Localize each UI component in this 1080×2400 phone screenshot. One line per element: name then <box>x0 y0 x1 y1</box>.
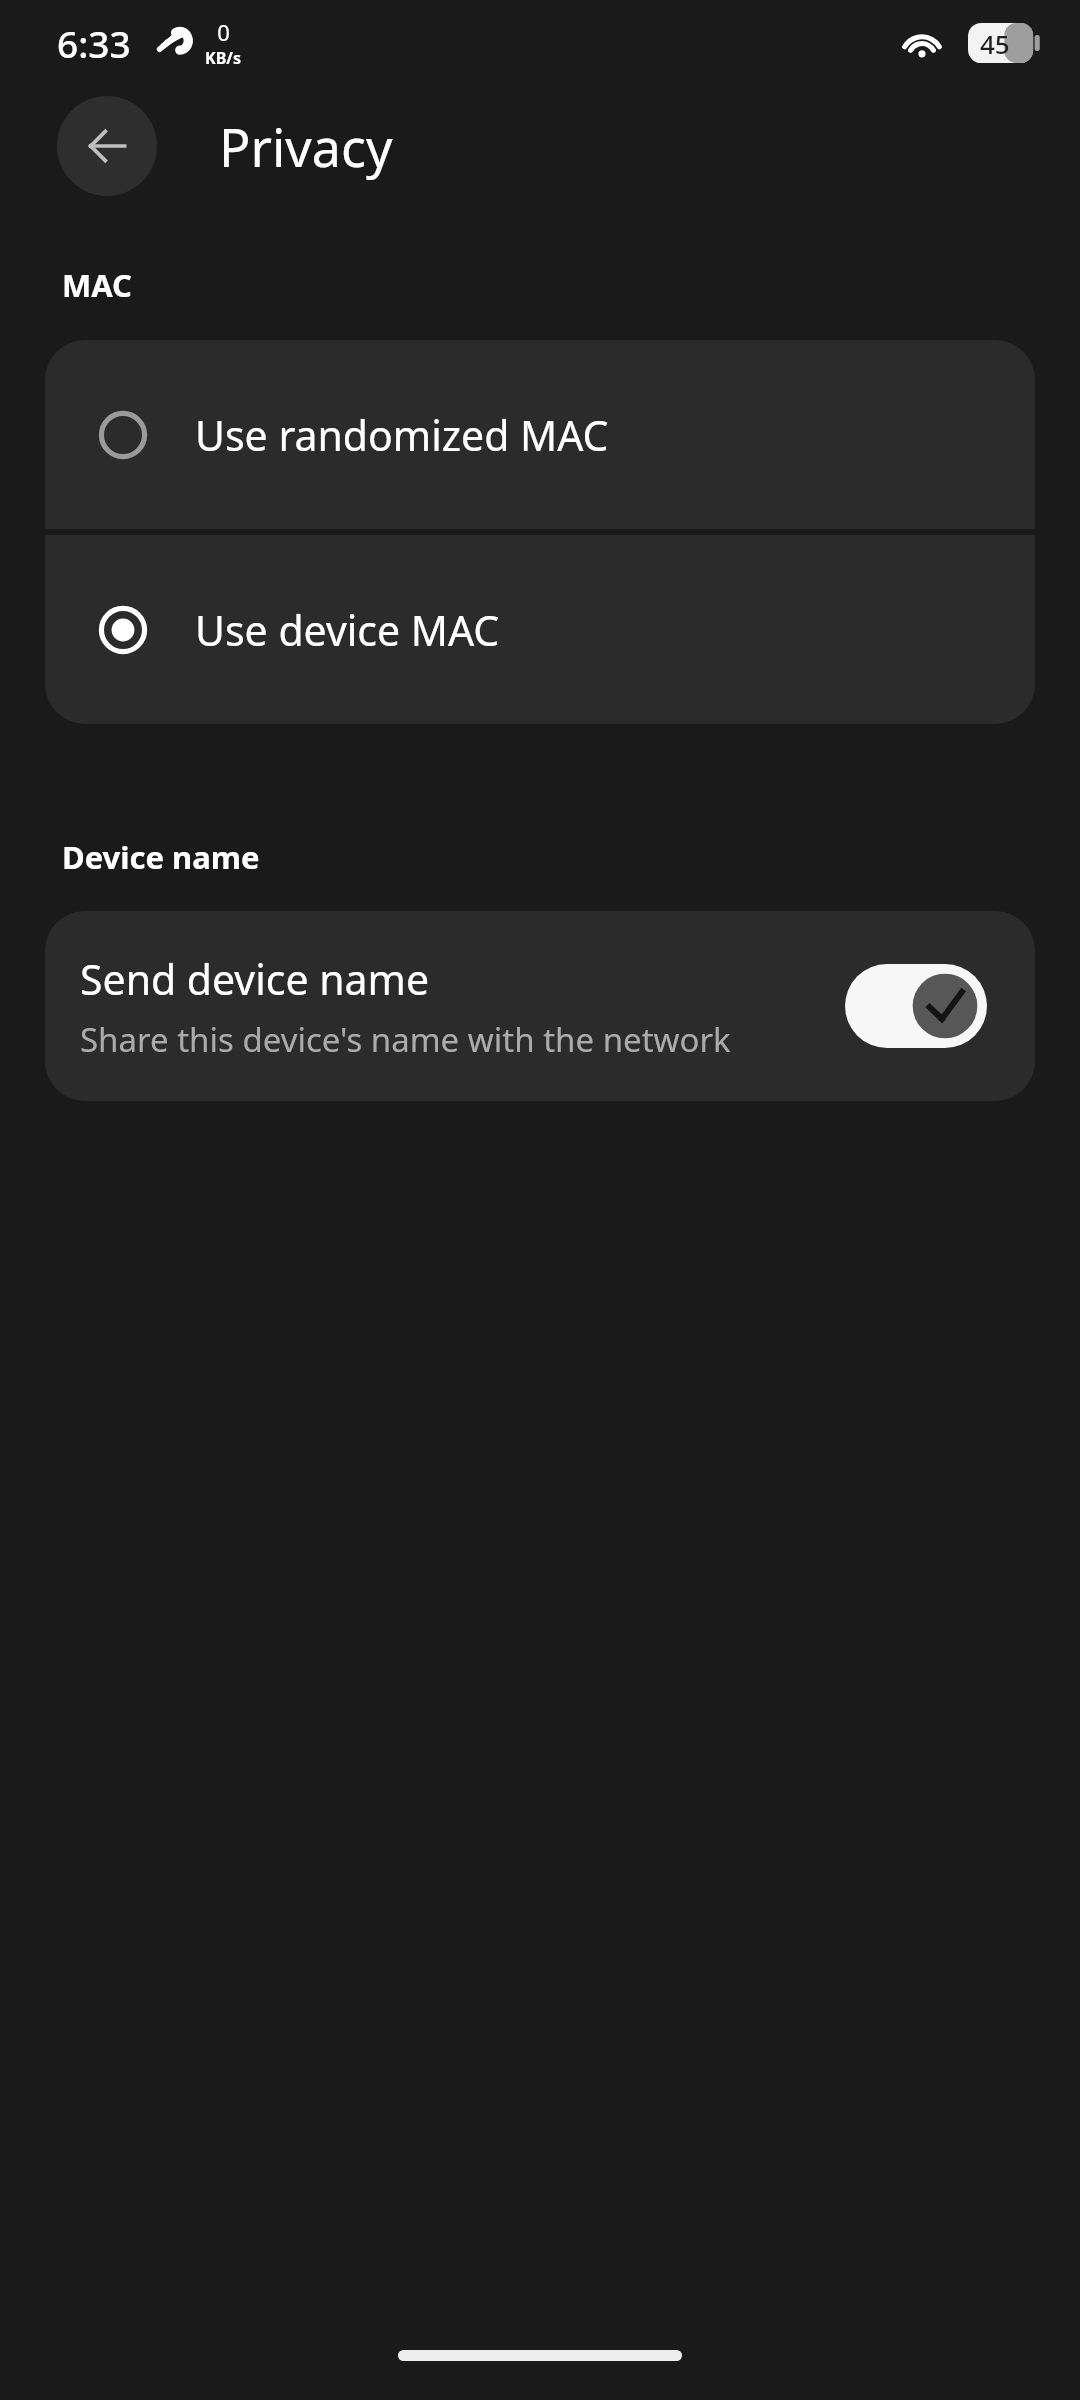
staticText: 0 <box>217 17 230 47</box>
staticText: Share this device's name with the networ… <box>80 1017 731 1062</box>
staticText: Use device MAC <box>195 602 500 658</box>
staticText: MAC <box>62 264 132 306</box>
button[interactable]: Send device name toggle <box>845 964 987 1048</box>
staticText: KB/s <box>205 47 241 69</box>
staticText: Send device name <box>80 951 430 1007</box>
button[interactable]: Use randomized MAC <box>45 340 1035 529</box>
staticText: Use randomized MAC <box>195 407 609 463</box>
button[interactable]: Use device MAC <box>45 535 1035 724</box>
staticText: 45 <box>980 26 1010 61</box>
staticText: Privacy <box>219 111 393 182</box>
staticText: Device name <box>62 836 260 878</box>
staticText: 6:33 <box>57 18 131 68</box>
button[interactable]: Back <box>57 96 157 196</box>
button[interactable]: Send device name <box>45 911 1035 1101</box>
